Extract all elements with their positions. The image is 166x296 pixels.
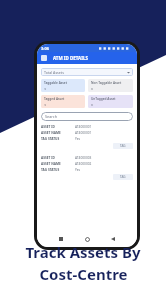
button[interactable]: Taggable Asset <box>41 79 85 92</box>
staticText: Yes <box>75 137 80 141</box>
staticText: ASSET NAME <box>41 131 75 135</box>
staticText: 3 <box>44 103 46 106</box>
staticText: Yes <box>75 168 80 172</box>
staticText: UnTagged Asset <box>91 97 116 101</box>
staticText: Search <box>45 114 58 119</box>
button[interactable]: Tagged Asset <box>41 95 85 108</box>
button[interactable]: Home <box>85 237 90 242</box>
button[interactable]: UnTagged Asset <box>88 95 133 108</box>
staticText: AT4000001 <box>75 125 92 129</box>
staticText: Track Assets By <box>25 242 141 262</box>
staticText: ASSET ID <box>41 125 75 129</box>
staticText: TAG <box>120 175 126 179</box>
button[interactable]: Menu <box>41 55 47 61</box>
button[interactable]: TAG <box>113 174 133 180</box>
button[interactable]: ASSET ID <box>41 125 133 151</box>
staticText: AT4000002 <box>75 162 92 166</box>
staticText: TAG STATUS <box>41 168 75 172</box>
staticText: 3:06 <box>41 46 49 51</box>
button[interactable]: ASSET ID <box>41 156 133 182</box>
staticText: AT4000001 <box>75 131 92 135</box>
button[interactable]: Total Assets <box>41 68 133 76</box>
staticText: ASSET NAME <box>41 162 75 166</box>
staticText: AT4000003 <box>75 156 92 160</box>
staticText: Cost-Centre <box>39 264 128 284</box>
button[interactable]: Search <box>41 112 133 121</box>
staticText: Taggable Asset <box>44 81 67 85</box>
staticText: 0 <box>91 103 93 106</box>
staticText: ASSET ID <box>41 156 75 160</box>
staticText: 3 <box>44 87 46 90</box>
staticText: TAG STATUS <box>41 137 75 141</box>
staticText: Tagged Asset <box>44 97 65 101</box>
button[interactable]: TAG <box>113 143 133 149</box>
staticText: ATM ID DETAILS <box>53 55 88 61</box>
staticText: 0 <box>91 87 93 90</box>
button[interactable]: Back <box>111 237 115 241</box>
staticText: TAG <box>120 144 126 148</box>
staticText: Non Taggable Asset <box>91 81 122 85</box>
staticText: Total Assets <box>44 70 64 75</box>
button[interactable]: Non Taggable Asset <box>88 79 133 92</box>
